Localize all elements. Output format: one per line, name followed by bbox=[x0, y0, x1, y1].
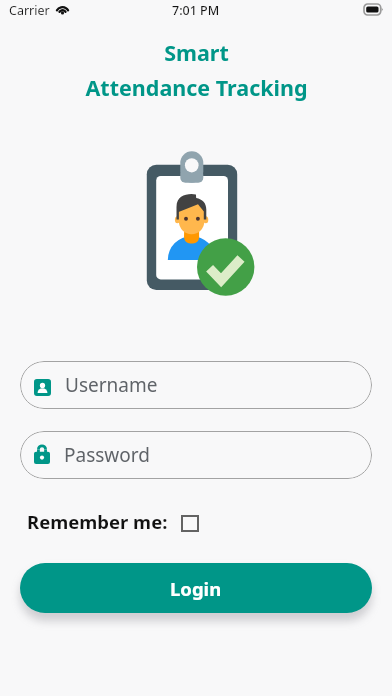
staticText: Carrier bbox=[9, 2, 50, 19]
staticText: Remember me: bbox=[27, 509, 168, 534]
staticText: Attendance Tracking bbox=[85, 73, 308, 102]
staticText: Password bbox=[64, 442, 150, 468]
button[interactable]: Password bbox=[20, 431, 372, 479]
staticText: Username bbox=[65, 372, 158, 398]
staticText: Smart bbox=[164, 38, 229, 67]
staticText: Login bbox=[170, 576, 222, 601]
button[interactable]: Remember me checkbox bbox=[181, 515, 199, 532]
staticText: 7:01 PM bbox=[172, 2, 220, 19]
button[interactable]: Username bbox=[20, 361, 372, 409]
button[interactable]: Login bbox=[20, 563, 372, 613]
